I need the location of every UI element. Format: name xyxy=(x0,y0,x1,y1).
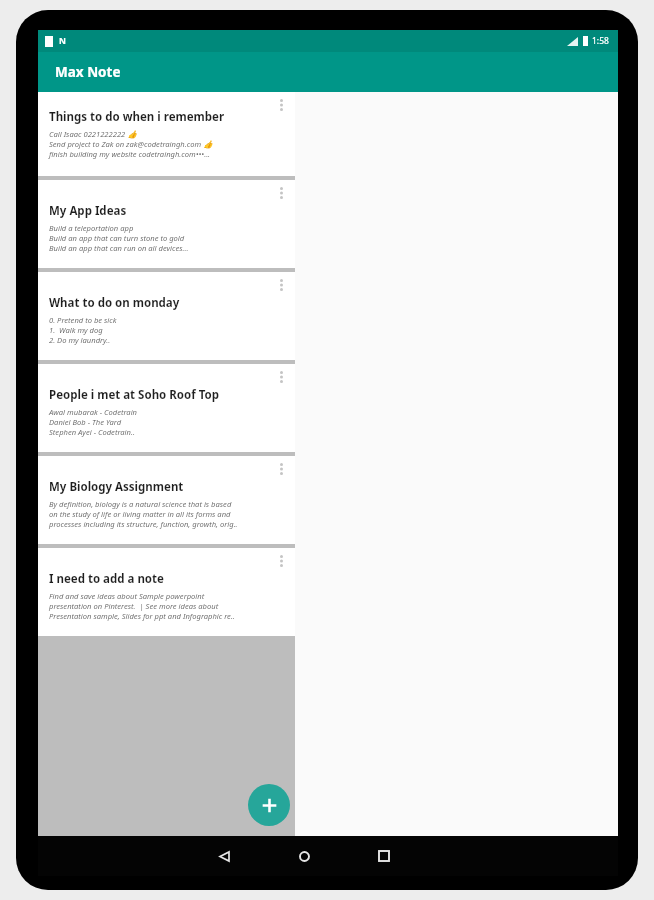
staticText: Send project to Zak on zak@codetraingh.c… xyxy=(49,139,213,149)
staticText: Max Note xyxy=(55,63,121,81)
staticText: 1:58 xyxy=(592,35,609,47)
button[interactable]: I need to add a note xyxy=(38,548,295,636)
staticText: Awal mubarak - Codetrain xyxy=(49,407,138,417)
staticText: By definition, biology is a natural scie… xyxy=(49,499,232,509)
staticText: Build an app that can run on all devices… xyxy=(49,243,189,253)
button[interactable]: What to do on monday xyxy=(38,272,295,360)
staticText: on the study of life or living matter in… xyxy=(49,509,231,519)
button[interactable]: More options xyxy=(273,459,289,479)
staticText: Find and save ideas about Sample powerpo… xyxy=(49,591,205,601)
staticText: 0. Pretend to be sick xyxy=(49,315,117,325)
button[interactable]: Back xyxy=(204,836,244,876)
button[interactable]: My Biology Assignment xyxy=(38,456,295,544)
staticText: Stephen Ayei - Codetrain.. xyxy=(49,427,135,437)
button[interactable]: Add note xyxy=(248,784,290,826)
staticText: processes including its structure, funct… xyxy=(49,519,238,529)
staticText: I need to add a note xyxy=(49,571,164,587)
button[interactable]: Recent apps xyxy=(364,836,404,876)
button[interactable]: More options xyxy=(273,367,289,387)
staticText: 1. Walk my dog xyxy=(49,325,103,335)
button[interactable]: More options xyxy=(273,95,289,115)
staticText: Daniel Bob - The Yard xyxy=(49,417,122,427)
staticText: My App Ideas xyxy=(49,203,127,219)
button[interactable]: Home xyxy=(284,836,324,876)
staticText: My Biology Assignment xyxy=(49,479,184,495)
staticText: Build a teleportation app xyxy=(49,223,134,233)
button[interactable]: More options xyxy=(273,183,289,203)
button[interactable]: More options xyxy=(273,551,289,571)
staticText: Build an app that can turn stone to gold xyxy=(49,233,185,243)
staticText: Things to do when i remember xyxy=(49,109,225,125)
staticText: presentation on Pinterest. | See more id… xyxy=(49,601,219,611)
button[interactable]: Things to do when i remember xyxy=(38,92,295,176)
staticText: N xyxy=(59,35,66,47)
staticText: Call Isaac 0221222222 👍 xyxy=(49,129,137,139)
button[interactable]: People i met at Soho Roof Top xyxy=(38,364,295,452)
button[interactable]: My App Ideas xyxy=(38,180,295,268)
staticText: 2. Do my laundry.. xyxy=(49,335,111,345)
staticText: Presentation sample, Slides for ppt and … xyxy=(49,611,235,621)
staticText: What to do on monday xyxy=(49,295,180,311)
button[interactable]: More options xyxy=(273,275,289,295)
staticText: finish building my website codetraingh.c… xyxy=(49,149,211,159)
staticText: People i met at Soho Roof Top xyxy=(49,387,219,403)
